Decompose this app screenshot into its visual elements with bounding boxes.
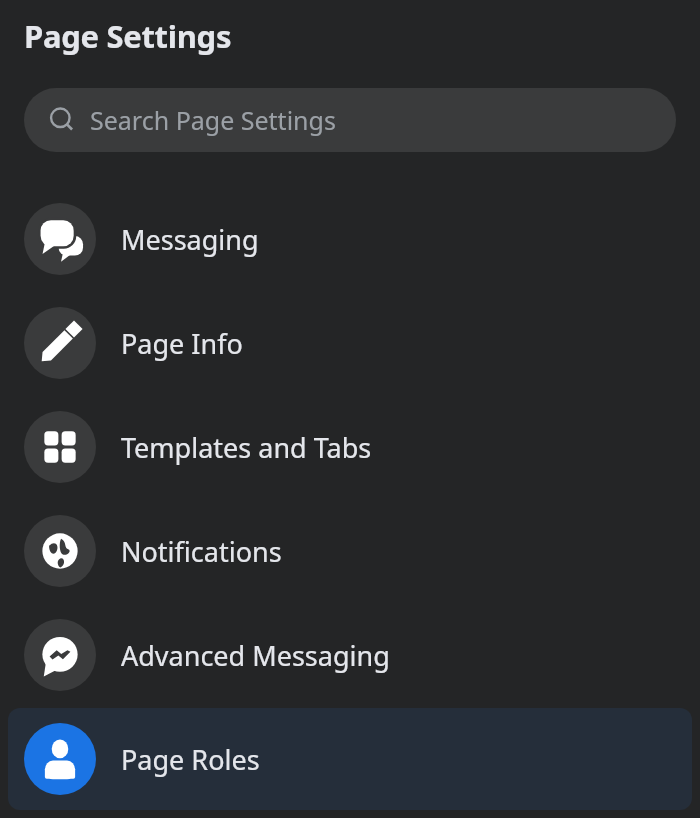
staticText: Page Settings: [24, 15, 232, 57]
staticText: Notifications: [121, 533, 282, 570]
button[interactable]: Messaging: [0, 187, 700, 291]
button[interactable]: Search Page Settings: [24, 88, 676, 152]
staticText: Advanced Messaging: [121, 637, 390, 674]
staticText: Templates and Tabs: [121, 429, 372, 466]
button[interactable]: Page Info: [0, 291, 700, 395]
staticText: Search Page Settings: [90, 103, 336, 137]
button[interactable]: Page Roles: [8, 708, 692, 810]
staticText: Page Info: [121, 325, 243, 362]
button[interactable]: Notifications: [0, 499, 700, 603]
button[interactable]: Templates and Tabs: [0, 395, 700, 499]
staticText: Messaging: [121, 221, 259, 258]
staticText: Page Roles: [121, 741, 260, 778]
button[interactable]: Advanced Messaging: [0, 603, 700, 707]
